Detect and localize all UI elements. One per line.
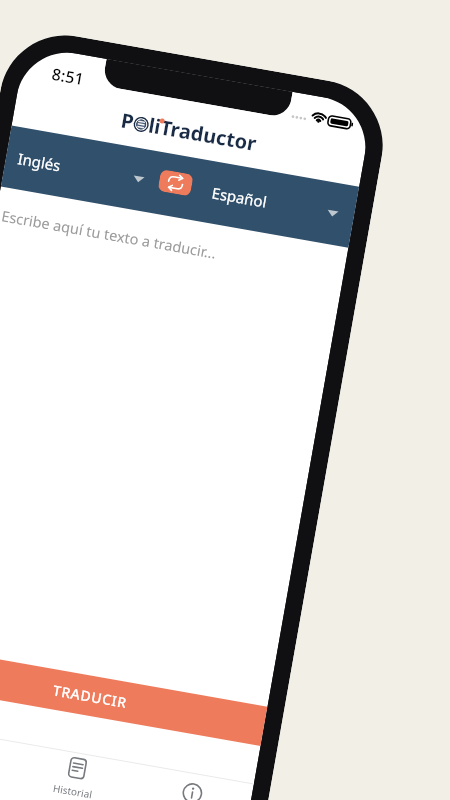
staticText: 8:51 <box>50 63 85 90</box>
button[interactable]: TRADUCIR <box>0 645 267 746</box>
staticText: Español <box>210 182 269 212</box>
button[interactable]: Español <box>186 158 359 248</box>
button[interactable]: Acerca <box>127 764 254 800</box>
button[interactable]: Inglés <box>1 125 164 213</box>
staticText: Escribe aquí tu texto a traducir... <box>0 205 218 263</box>
staticText: TRADUCIR <box>51 680 129 712</box>
staticText: liTraductor <box>146 111 259 157</box>
staticText: P <box>119 107 136 135</box>
button[interactable]: Intercambiar idiomas <box>157 169 194 196</box>
staticText: Historial <box>52 781 94 800</box>
button[interactable]: Historial <box>11 743 138 800</box>
staticText: Inglés <box>16 148 63 175</box>
